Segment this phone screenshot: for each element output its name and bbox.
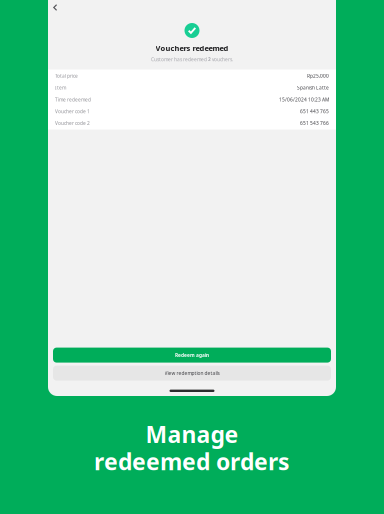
button[interactable]: View redemption details [53,366,331,381]
staticText: 651 543 766 [300,120,329,126]
button[interactable]: Back [49,0,61,15]
staticText: View redemption details [164,370,219,376]
staticText: 15/06/2024 10:23 AM [279,96,329,103]
button[interactable]: Redeem again [53,348,331,363]
staticText: Customer has redeemed 2 vouchers. [151,56,233,63]
staticText: redeemed orders [94,446,290,477]
staticText: Voucher code 1 [55,108,90,115]
staticText: 651 443 765 [300,108,329,115]
staticText: Vouchers redeemed [155,43,228,53]
staticText: Redeem again [175,352,209,358]
staticText: Time redeemed [55,96,91,103]
staticText: Total price [55,73,78,79]
staticText: Rp25,000 [307,73,329,79]
staticText: Item [55,84,66,91]
staticText: Voucher code 2 [55,120,90,126]
staticText: Manage [145,418,238,450]
staticText: Spanish Latte [297,84,329,91]
